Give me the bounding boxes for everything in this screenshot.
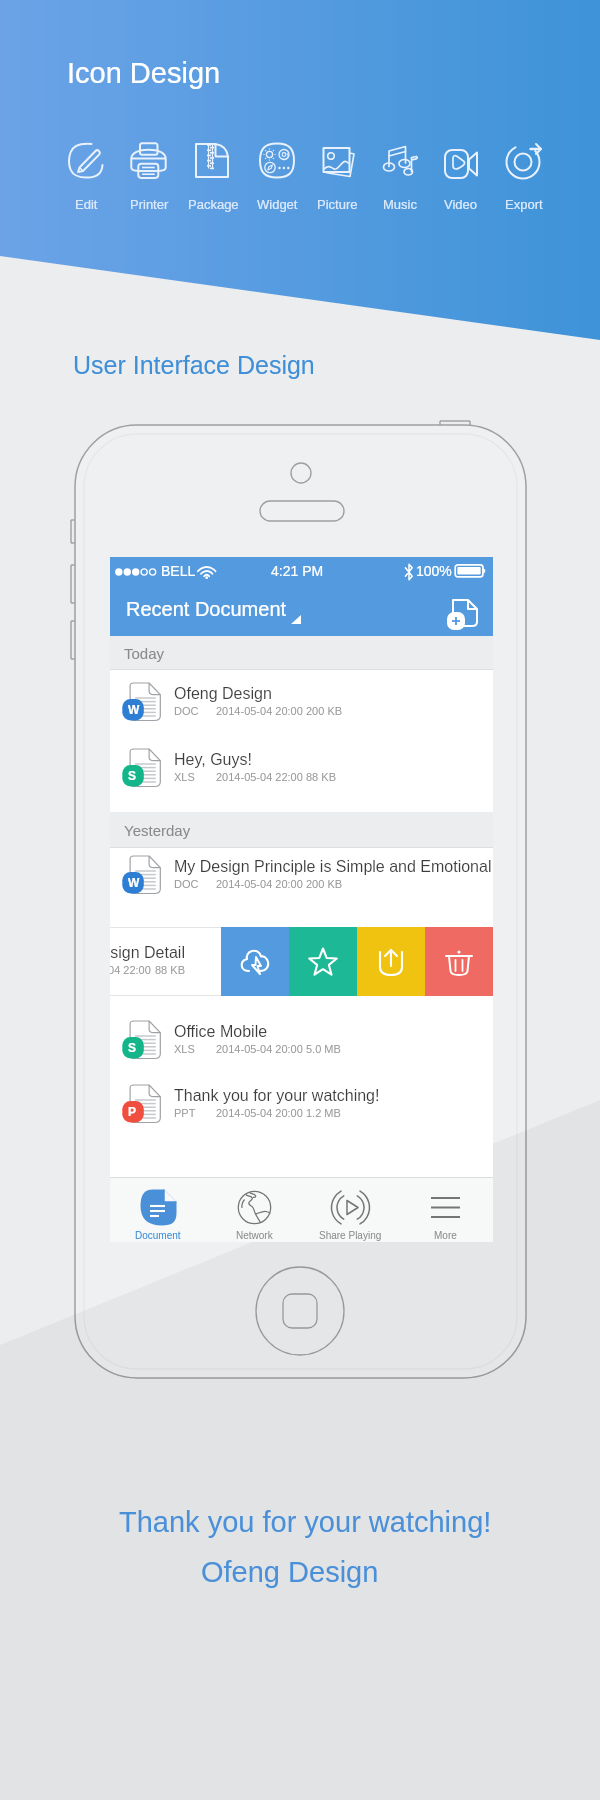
staticText: More [434,1230,457,1241]
staticText: 2014-05-04 22:00 [110,964,151,976]
staticText: 5.0 MB [306,1043,341,1055]
staticText: User Interface Design [73,351,315,379]
button[interactable]: Edit [55,138,117,212]
staticText: My Design Detail [110,944,185,962]
button[interactable]: Video [430,138,492,212]
staticText: 2014-05-04 20:00 [216,1107,303,1119]
button[interactable]: P [110,1078,493,1130]
button[interactable]: New document [444,592,488,632]
staticText: DOC [174,878,199,890]
staticText: W [128,876,140,889]
staticText: 100% [416,563,452,579]
button[interactable]: W [110,676,493,728]
button[interactable]: Delete [425,927,493,996]
button[interactable]: Export [493,138,555,212]
staticText: Video [444,197,478,212]
staticText: Office Mobile [174,1023,268,1041]
button[interactable]: Network [206,1177,302,1242]
button[interactable]: Recent Document [118,588,318,636]
staticText: 2014-05-04 20:00 [216,705,303,717]
button[interactable]: Share Playing [302,1177,398,1242]
button[interactable]: Cloud [221,927,289,996]
staticText: Package [188,197,239,212]
button[interactable]: Picture [306,138,368,212]
staticText: 2014-05-04 20:00 [216,1043,303,1055]
button[interactable]: S [110,1014,493,1066]
staticText: W [128,703,140,716]
staticText: Export [505,197,543,212]
staticText: Recent Document [126,598,287,620]
staticText: Thank you for your watching! [174,1087,380,1105]
button[interactable]: Favourite [289,927,357,996]
staticText: 200 KB [306,705,343,717]
staticText: 2014-05-04 20:00 [216,878,303,890]
staticText: Hey, Guys! [174,751,252,769]
staticText: 1.2 MB [306,1107,341,1119]
staticText: Yesterday [124,822,191,839]
staticText: S [128,1041,137,1054]
button[interactable]: S [110,742,493,794]
staticText: Ofeng Design [201,1556,379,1588]
staticText: Widget [257,197,298,212]
button[interactable]: Package [182,138,244,212]
staticText: 2014-05-04 22:00 [216,771,303,783]
button[interactable]: Upload [357,927,425,996]
staticText: S [128,769,137,782]
staticText: P [128,1105,137,1118]
button[interactable]: My Design Detail [110,927,493,996]
staticText: Network [236,1230,273,1241]
staticText: Icon Design [67,57,221,89]
staticText: DOC [174,705,199,717]
staticText: Edit [75,197,98,212]
staticText: Picture [317,197,358,212]
staticText: Printer [130,197,169,212]
staticText: XLS [174,771,195,783]
staticText: 88 KB [306,771,336,783]
button[interactable]: Document [110,1177,206,1242]
staticText: Today [124,645,165,662]
button[interactable]: More [398,1177,493,1242]
button[interactable]: W [110,849,493,901]
staticText: 200 KB [306,878,343,890]
button[interactable]: Music [369,138,431,212]
button[interactable]: Widget [246,138,308,212]
staticText: Share Playing [319,1230,382,1241]
staticText: BELL [161,563,196,579]
button[interactable]: Printer [118,138,180,212]
staticText: XLS [174,1043,195,1055]
staticText: My Design Principle is Simple and Emotio… [174,858,492,876]
staticText: Music [383,197,417,212]
staticText: 4:21 PM [271,563,324,579]
staticText: Thank you for your watching! [119,1506,492,1538]
staticText: Document [135,1230,181,1241]
staticText: 88 KB [155,964,185,976]
staticText: PPT [174,1107,196,1119]
staticText: Ofeng Design [174,685,272,703]
